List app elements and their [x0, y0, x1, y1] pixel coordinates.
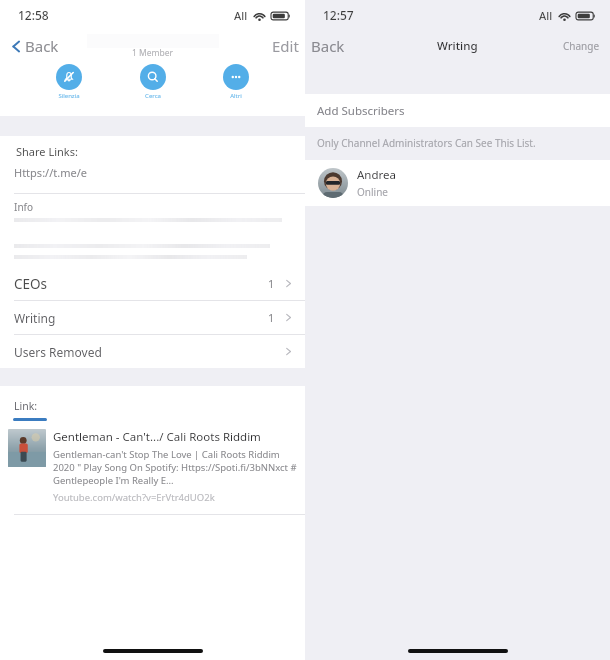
button[interactable]: Change [559, 35, 604, 57]
staticText: Edit [272, 36, 299, 56]
button[interactable]: Share Links: [0, 136, 305, 193]
staticText: Users Removed [14, 344, 102, 360]
staticText: Cerca [145, 92, 161, 100]
staticText: Writing [14, 310, 56, 326]
staticText: Silenzia [58, 92, 80, 100]
button[interactable]: Silenzia [56, 64, 82, 100]
staticText: 1 [268, 310, 275, 325]
staticText: 1 [268, 276, 275, 291]
staticText: Gentleman - Can't.../ Cali Roots Riddim [53, 429, 261, 445]
staticText: Https://t.me/e [14, 165, 87, 180]
button[interactable]: Add Subscribers [305, 94, 610, 127]
button[interactable]: Andrea [305, 160, 610, 206]
button[interactable]: Back [8, 32, 61, 60]
staticText: Back [311, 36, 345, 56]
staticText: Change [563, 39, 600, 53]
staticText: All [539, 8, 553, 23]
button[interactable]: Back [307, 32, 349, 60]
button[interactable]: Gentleman - Can't.../ Cali Roots Riddim [0, 429, 305, 504]
staticText: CEOs [14, 275, 48, 293]
button[interactable]: Writing [0, 301, 305, 334]
staticText: 1 Member [132, 47, 174, 59]
staticText: Info [14, 200, 34, 214]
staticText: Add Subscribers [317, 103, 405, 119]
staticText: Writing [437, 38, 478, 54]
button[interactable]: CEOs [0, 267, 305, 300]
staticText: 12:58 [18, 7, 49, 23]
button[interactable]: Cerca [140, 64, 166, 100]
staticText: 12:57 [323, 7, 354, 23]
staticText: All [234, 8, 248, 23]
staticText: Youtube.com/watch?v=ErVtr4dUO2k [53, 491, 215, 504]
button[interactable]: Altri [223, 64, 249, 100]
staticText: Share Links: [16, 144, 78, 159]
staticText: Link: [14, 399, 38, 413]
staticText: Altri [230, 92, 242, 100]
staticText: Gentleman-can't Stop The Love | Cali Roo… [53, 448, 297, 487]
staticText: Andrea [357, 167, 396, 183]
button[interactable]: Edit [268, 32, 303, 60]
button[interactable]: Users Removed [0, 335, 305, 368]
staticText: Online [357, 185, 388, 199]
button[interactable]: Link: [0, 399, 38, 413]
staticText: Back [25, 36, 59, 56]
staticText: Only Channel Administrators Can See This… [317, 136, 536, 150]
